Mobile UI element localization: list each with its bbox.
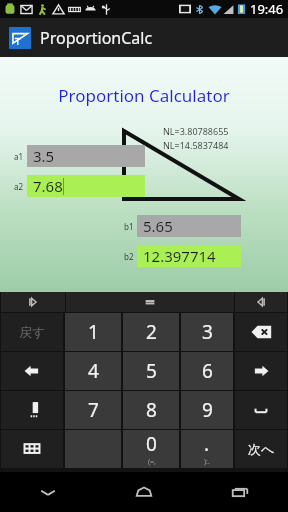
button[interactable]: 3 <box>181 313 233 351</box>
button[interactable]: right <box>235 352 287 390</box>
staticText: 19:46 <box>250 0 284 18</box>
staticText: b2 <box>124 251 134 262</box>
button[interactable]: del <box>235 313 287 351</box>
staticText: 7 <box>88 397 99 423</box>
button[interactable]: 9 <box>181 391 233 429</box>
staticText: 3.5 <box>33 146 55 166</box>
staticText: ):. <box>204 457 210 467</box>
staticText: 1 <box>88 319 99 345</box>
staticText: NL=14.5837484 <box>163 139 229 151</box>
button[interactable]: 1 <box>65 313 121 351</box>
button[interactable]: 7 <box>65 391 121 429</box>
staticText: 3 <box>202 319 213 345</box>
button[interactable]: 2 <box>123 313 179 351</box>
button[interactable]: ime <box>1 391 63 429</box>
button[interactable]: left <box>1 352 63 390</box>
staticText: 7.68 <box>33 176 63 196</box>
staticText: NL=3.80788655 <box>163 125 229 137</box>
staticText: 6 <box>202 358 213 384</box>
button[interactable]: 4 <box>65 352 121 390</box>
button[interactable]: 8 <box>123 391 179 429</box>
button[interactable]: ProportionCalc <box>0 18 288 57</box>
button[interactable]: Recents <box>192 472 288 512</box>
staticText: a1 <box>14 151 24 162</box>
button[interactable]: play <box>1 292 65 312</box>
staticText: . <box>204 431 210 457</box>
staticText: a2 <box>14 181 24 192</box>
button[interactable]: grid <box>1 430 63 468</box>
staticText: 2 <box>146 319 157 345</box>
staticText: 5 <box>146 358 157 384</box>
button[interactable]: 戻す <box>1 313 63 351</box>
button[interactable]: 次へ <box>235 430 287 468</box>
staticText: b1 <box>124 221 134 232</box>
button[interactable]: 12.397714 <box>137 245 241 267</box>
button[interactable]: back <box>235 292 287 312</box>
staticText: 9 <box>202 397 213 423</box>
button[interactable]: Back <box>0 472 96 512</box>
staticText: 次へ <box>248 441 275 457</box>
button[interactable]: Home <box>96 472 192 512</box>
staticText: 12.397714 <box>143 246 216 266</box>
button[interactable]: 5 <box>123 352 179 390</box>
staticText: 5.65 <box>143 216 173 236</box>
button[interactable]: bars <box>66 292 234 312</box>
staticText: (=, <box>148 457 156 467</box>
staticText: 8 <box>146 397 157 423</box>
button[interactable]: 6 <box>181 352 233 390</box>
button[interactable]: . <box>181 430 233 468</box>
staticText: ProportionCalc <box>40 27 153 49</box>
staticText: Proportion Calculator <box>58 84 230 107</box>
staticText: 戻す <box>19 324 46 340</box>
button[interactable]: 5.65 <box>137 215 241 237</box>
button[interactable]: 0 <box>123 430 179 468</box>
button[interactable]: space <box>235 391 287 429</box>
button[interactable]: 3.5 <box>27 145 145 167</box>
button[interactable]: 7.68 <box>27 175 145 197</box>
staticText: 4 <box>88 358 99 384</box>
staticText: 0 <box>146 431 157 457</box>
